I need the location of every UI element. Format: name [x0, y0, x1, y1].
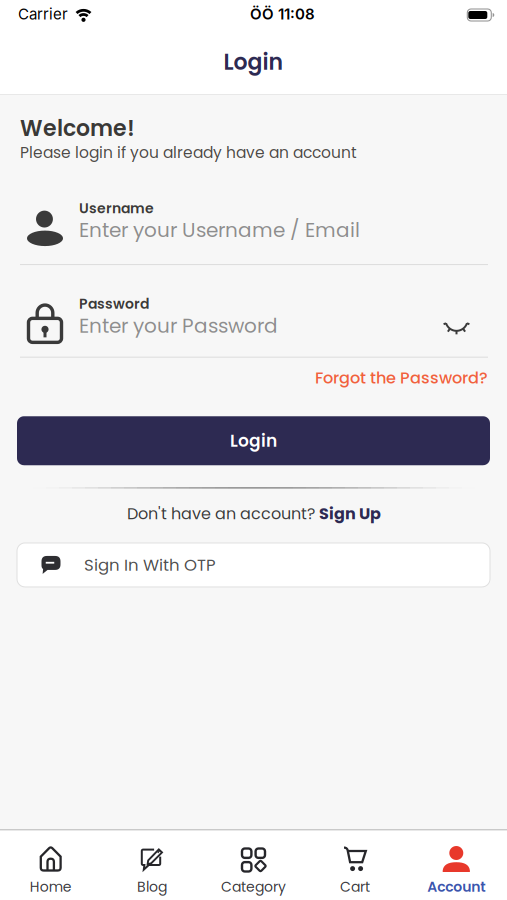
button[interactable]: Home — [0, 845, 101, 897]
staticText: Carrier — [18, 5, 68, 23]
staticText: Login — [223, 47, 283, 77]
staticText: Sign In With OTP — [84, 553, 216, 576]
staticText: Forgot the Password? — [315, 367, 488, 389]
staticText: Don't have an account? — [127, 502, 319, 525]
staticText: Cart — [340, 877, 370, 897]
staticText: Account — [427, 877, 485, 897]
button[interactable]: Sign In With OTP — [17, 543, 490, 587]
button[interactable]: Show password — [443, 309, 488, 324]
staticText: Home — [30, 877, 72, 897]
staticText: Category — [221, 877, 286, 897]
staticText: Please login if you already have an acco… — [20, 142, 357, 163]
staticText: Welcome! — [20, 113, 135, 144]
button[interactable]: Forgot the Password? — [315, 367, 488, 389]
button[interactable]: Category — [203, 845, 304, 897]
staticText: Sign Up — [319, 502, 381, 525]
staticText: Enter your Password — [79, 312, 278, 340]
button[interactable]: Cart — [304, 845, 406, 897]
staticText: Password — [79, 294, 149, 314]
button[interactable]: Account — [406, 845, 507, 897]
staticText: Enter your Username / Email — [79, 216, 360, 244]
staticText: Login — [230, 429, 277, 453]
staticText: ÖÖ 11:08 — [250, 5, 315, 23]
staticText: Username — [79, 198, 154, 218]
staticText: Blog — [137, 877, 167, 897]
button[interactable]: Sign Up — [319, 502, 381, 525]
button[interactable]: Login — [17, 416, 490, 465]
button[interactable]: Blog — [101, 845, 203, 897]
